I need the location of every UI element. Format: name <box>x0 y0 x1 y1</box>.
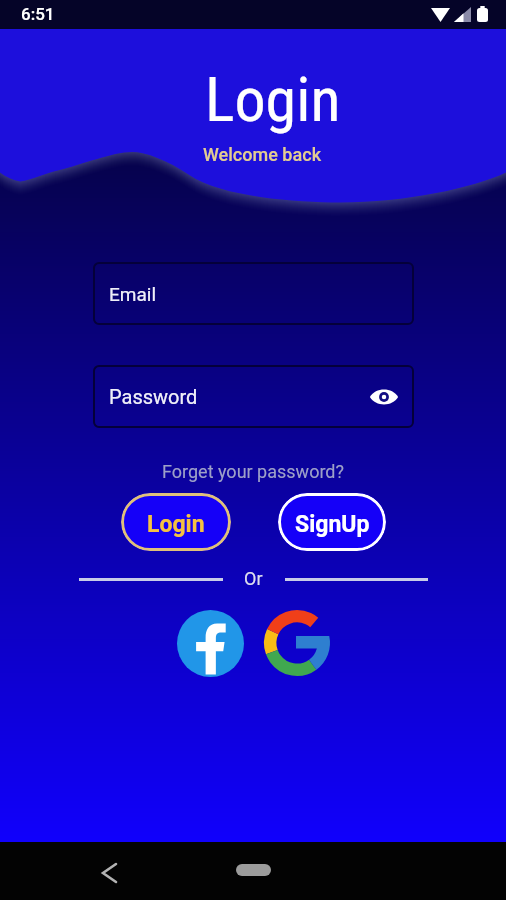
button[interactable]: Email <box>93 262 414 325</box>
button[interactable]: Password <box>93 365 414 428</box>
button[interactable]: Show password <box>367 380 401 414</box>
staticText: SignUp <box>295 511 370 538</box>
staticText: Login <box>205 63 341 136</box>
staticText: 6:51 <box>21 4 55 24</box>
staticText: Email <box>109 283 157 305</box>
staticText: Or <box>244 568 263 589</box>
button[interactable]: Back <box>91 855 127 891</box>
button[interactable]: Login <box>121 493 231 551</box>
button[interactable]: Sign in with Google <box>264 610 330 676</box>
button[interactable]: SignUp <box>278 493 386 551</box>
button[interactable]: Forget your password? <box>162 461 344 482</box>
button[interactable]: Home <box>236 864 271 876</box>
button[interactable]: Sign in with Facebook <box>177 610 244 677</box>
staticText: Password <box>109 385 198 408</box>
staticText: Login <box>147 511 205 538</box>
staticText: Welcome back <box>203 144 322 165</box>
